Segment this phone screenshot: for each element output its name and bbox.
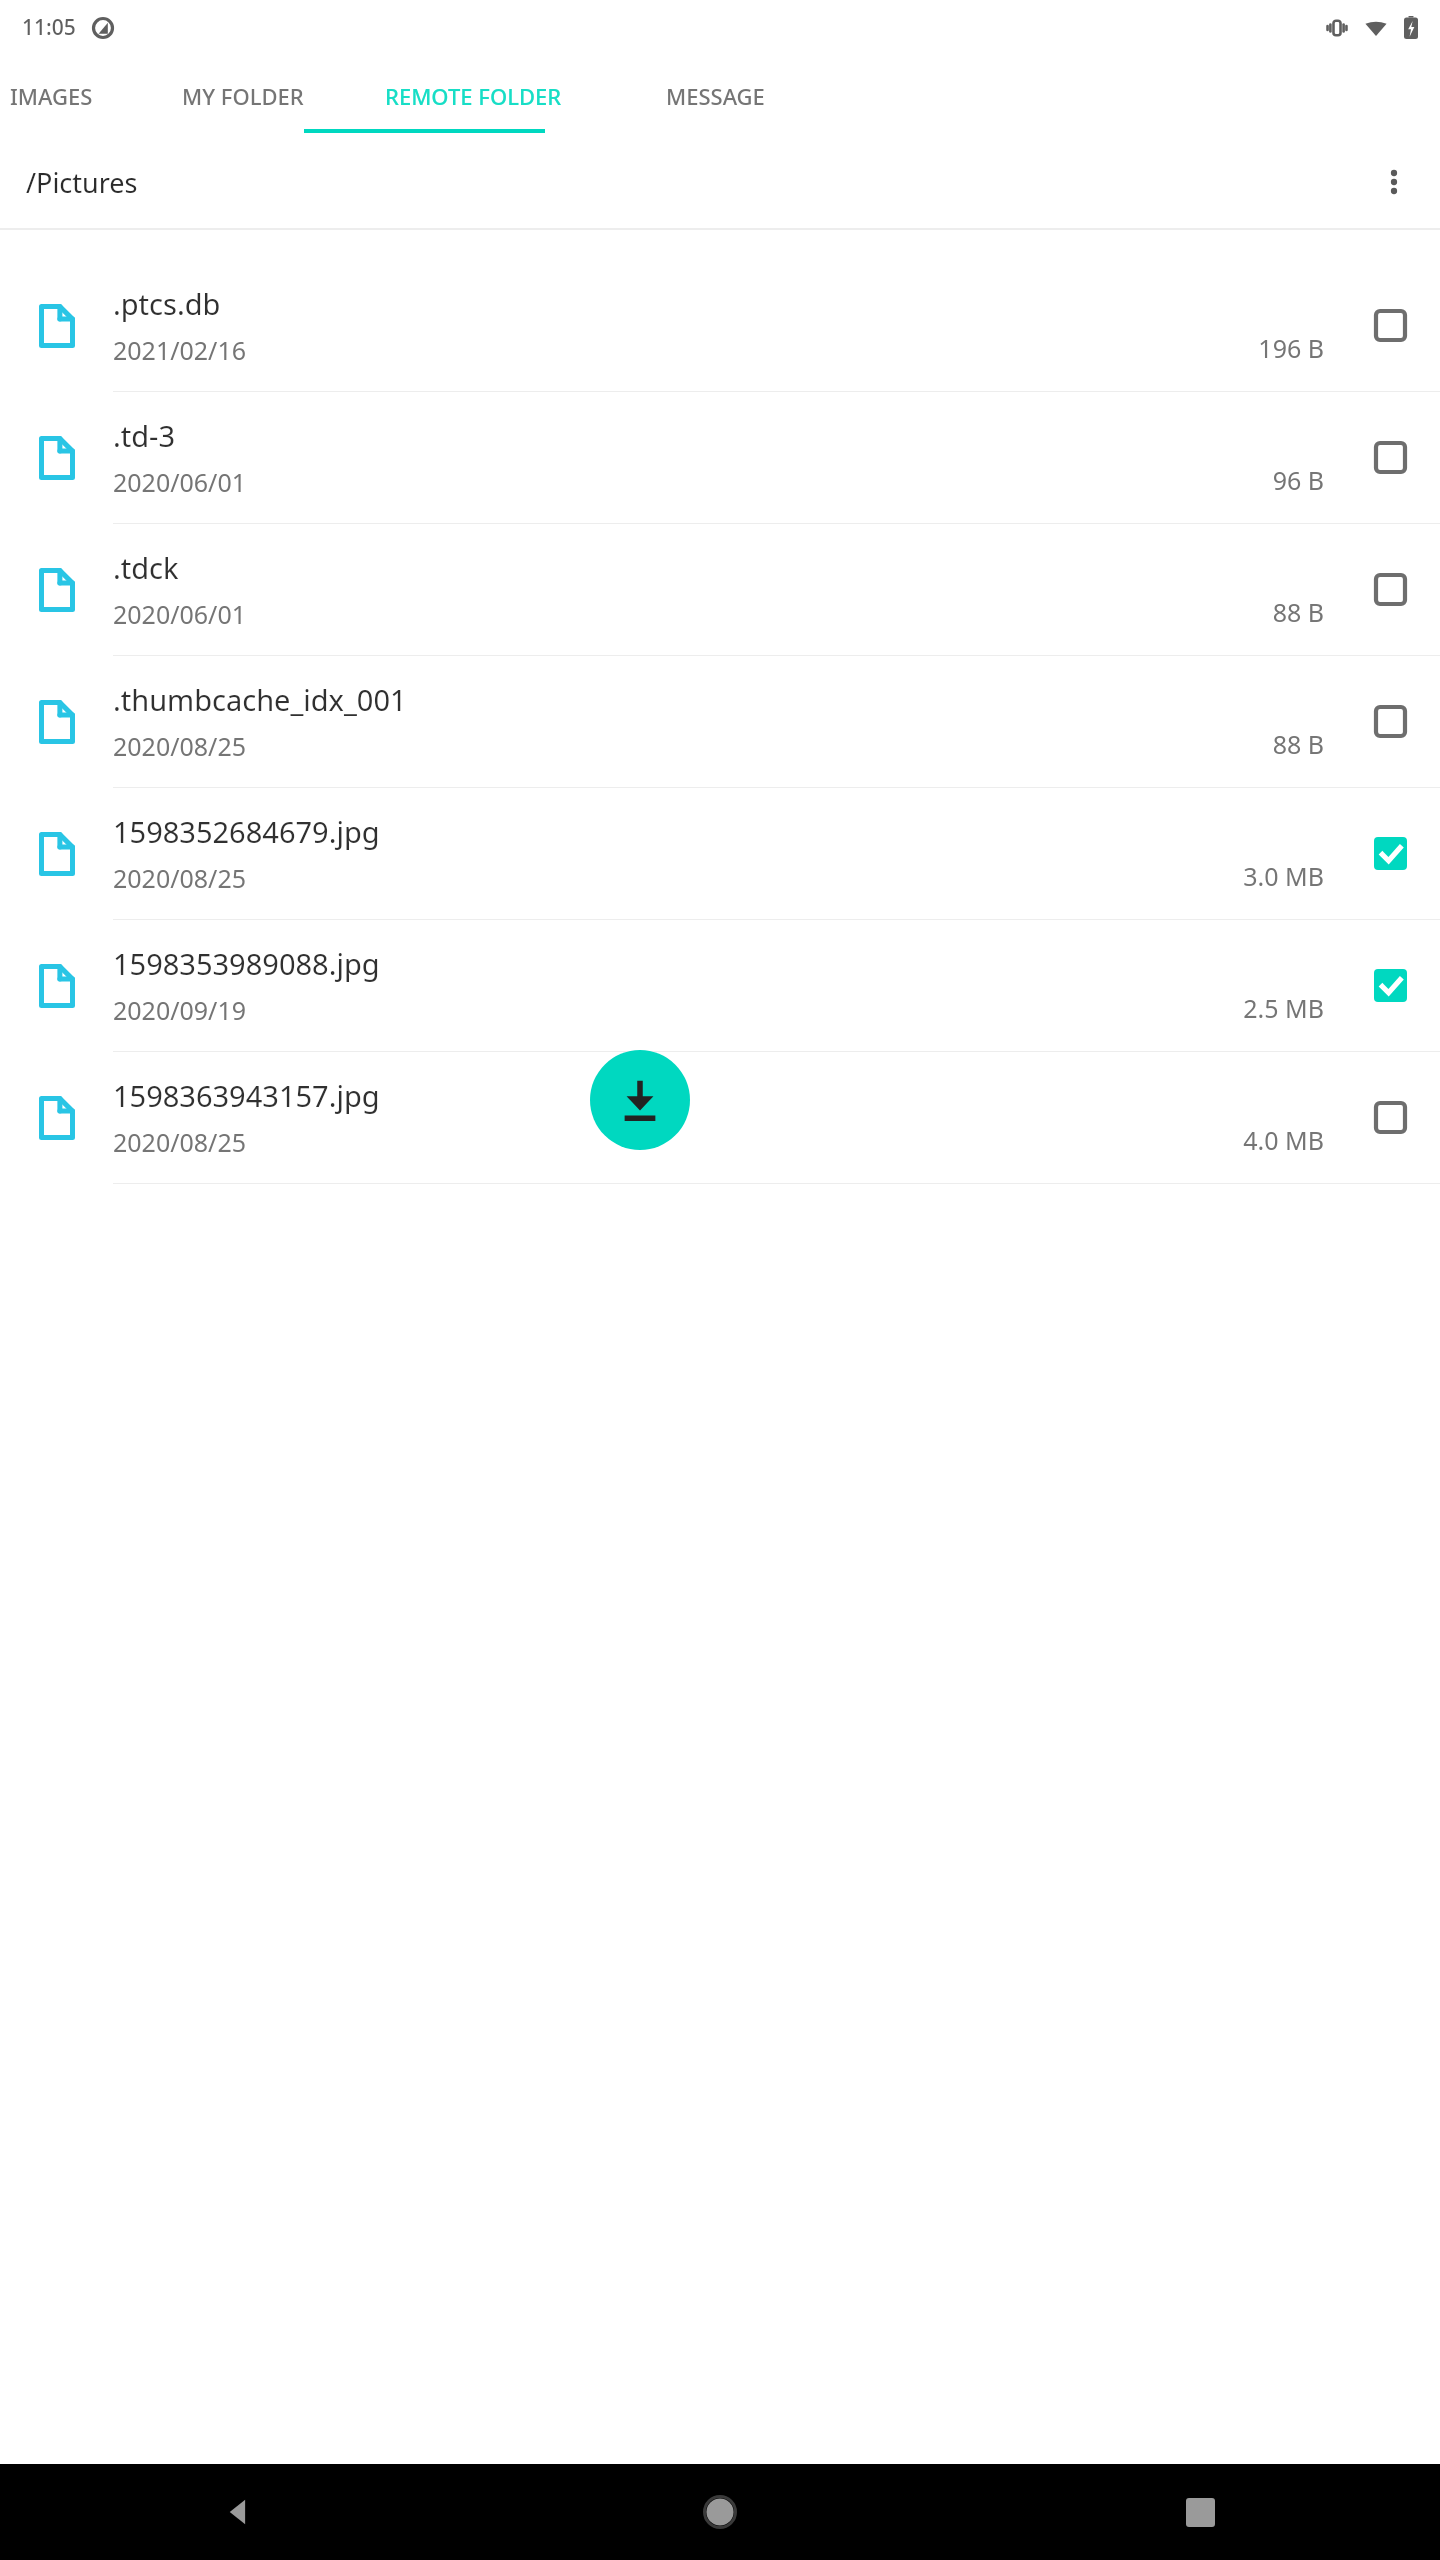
staticText: 2020/09/19 xyxy=(113,993,247,1027)
button[interactable]: IMAGES xyxy=(0,55,116,136)
staticText: 4.0 MB xyxy=(1243,1123,1324,1157)
staticText: MY FOLDER xyxy=(182,81,304,111)
staticText: .td-3 xyxy=(113,416,176,455)
staticText: 1598353989088.jpg xyxy=(113,944,380,983)
staticText: 96 B xyxy=(1272,463,1324,497)
button[interactable]: REMOTE FOLDER xyxy=(352,55,594,136)
staticText: MESSAGE xyxy=(666,81,765,111)
staticText: 2020/06/01 xyxy=(113,597,247,631)
button[interactable]: .thumbcache_idx_001 xyxy=(0,656,1440,787)
button[interactable]: Select .ptcs.db xyxy=(1340,260,1440,391)
button[interactable]: Home xyxy=(480,2464,960,2560)
button[interactable]: Back xyxy=(0,2464,480,2560)
button[interactable]: .td-3 xyxy=(0,392,1440,523)
button[interactable]: .tdck xyxy=(0,524,1440,655)
staticText: 2021/02/16 xyxy=(113,333,247,367)
staticText: 88 B xyxy=(1272,595,1324,629)
button[interactable]: Select 1598353989088.jpg xyxy=(1340,920,1440,1051)
staticText: 2020/06/01 xyxy=(113,465,247,499)
staticText: 196 B xyxy=(1258,331,1324,365)
button[interactable]: Select .thumbcache_idx_001 xyxy=(1340,656,1440,787)
staticText: 3.0 MB xyxy=(1243,859,1324,893)
staticText: 2.5 MB xyxy=(1243,991,1324,1025)
button[interactable]: 1598352684679.jpg xyxy=(0,788,1440,919)
staticText: 2020/08/25 xyxy=(113,861,247,895)
button[interactable]: Select 1598363943157.jpg xyxy=(1340,1052,1440,1183)
staticText: /Pictures xyxy=(26,164,138,201)
staticText: .thumbcache_idx_001 xyxy=(113,680,407,719)
staticText: 1598363943157.jpg xyxy=(113,1076,380,1115)
staticText: 11:05 xyxy=(22,13,76,42)
staticText: 2020/08/25 xyxy=(113,1125,247,1159)
staticText: .ptcs.db xyxy=(113,284,221,323)
button[interactable]: Select .td-3 xyxy=(1340,392,1440,523)
staticText: REMOTE FOLDER xyxy=(385,81,562,111)
button[interactable]: MESSAGE xyxy=(625,55,805,136)
button[interactable]: More options xyxy=(1366,154,1422,210)
staticText: 88 B xyxy=(1272,727,1324,761)
button[interactable]: MY FOLDER xyxy=(150,55,335,136)
button[interactable]: Download xyxy=(590,1050,690,1150)
button[interactable]: .ptcs.db xyxy=(0,260,1440,391)
staticText: 2020/08/25 xyxy=(113,729,247,763)
button[interactable]: Select .tdck xyxy=(1340,524,1440,655)
staticText: 1598352684679.jpg xyxy=(113,812,380,851)
button[interactable]: 1598353989088.jpg xyxy=(0,920,1440,1051)
staticText: .tdck xyxy=(113,548,179,587)
button[interactable]: 1598363943157.jpg xyxy=(0,1052,1440,1183)
button[interactable]: Recent apps xyxy=(960,2464,1440,2560)
staticText: IMAGES xyxy=(10,81,93,111)
button[interactable]: Select 1598352684679.jpg xyxy=(1340,788,1440,919)
